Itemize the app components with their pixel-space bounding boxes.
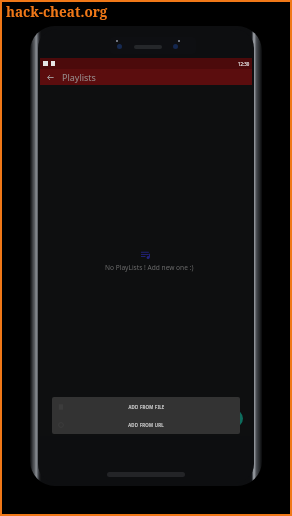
button[interactable]: ADD FROM URL: [52, 416, 240, 434]
staticText: ADD FROM URL: [128, 422, 164, 428]
staticText: 12:30: [238, 61, 250, 67]
staticText: Playlists: [62, 71, 96, 83]
button[interactable]: Add new playlist: [226, 410, 243, 427]
staticText: ADD FROM FILE: [128, 404, 165, 410]
staticText: hack-cheat.org: [6, 3, 108, 21]
button[interactable]: Back: [43, 70, 57, 84]
staticText: No PlayLists ! Add new one :): [105, 263, 194, 272]
button[interactable]: ADD FROM FILE: [52, 397, 240, 416]
